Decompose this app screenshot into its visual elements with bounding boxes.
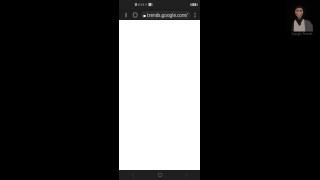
button[interactable]: trends.google.com/trends [141, 11, 191, 19]
button[interactable]: Google Trends Tutorial [291, 32, 313, 36]
staticText: Google Trends Tutorial [291, 32, 313, 36]
button[interactable]: Back [122, 11, 130, 19]
button[interactable]: Tabs [131, 11, 139, 19]
staticText: trends.google.com/trends [147, 12, 191, 18]
button[interactable]: More options [191, 11, 198, 18]
button[interactable]: Presenter camera [286, 0, 320, 36]
button[interactable]: Home [155, 170, 165, 180]
